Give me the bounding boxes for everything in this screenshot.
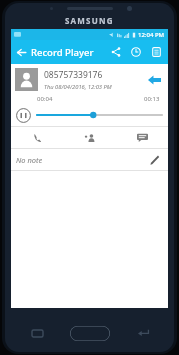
staticText: 12:04 PM xyxy=(138,31,165,39)
staticText: SAMSUNG xyxy=(65,15,114,26)
button[interactable]: Edit note xyxy=(146,152,162,168)
button[interactable]: Back xyxy=(136,326,150,340)
button[interactable]: 085757339176 xyxy=(11,64,168,95)
button[interactable]: Playback position xyxy=(37,107,162,123)
staticText: Thu 08/04/2016, 12:03 PM xyxy=(44,83,112,91)
button[interactable]: Incoming call xyxy=(144,70,164,90)
button[interactable]: Message xyxy=(116,127,168,148)
button[interactable]: Home xyxy=(70,326,110,341)
staticText: 085757339176 xyxy=(44,69,103,81)
button[interactable]: Notes xyxy=(146,40,166,64)
button[interactable]: Recents xyxy=(30,326,44,340)
button[interactable]: Add contact xyxy=(64,127,116,148)
button[interactable]: History xyxy=(126,40,146,64)
staticText: 00:04 xyxy=(37,95,53,103)
button[interactable]: Navigate up xyxy=(11,40,31,64)
button[interactable]: Pause xyxy=(15,107,32,124)
staticText: 00:13 xyxy=(144,95,160,103)
button[interactable]: Share xyxy=(106,40,126,64)
staticText: Record Player xyxy=(31,46,106,59)
button[interactable]: No note xyxy=(11,149,168,170)
button[interactable]: Call xyxy=(11,127,64,148)
staticText: No note xyxy=(16,155,146,165)
